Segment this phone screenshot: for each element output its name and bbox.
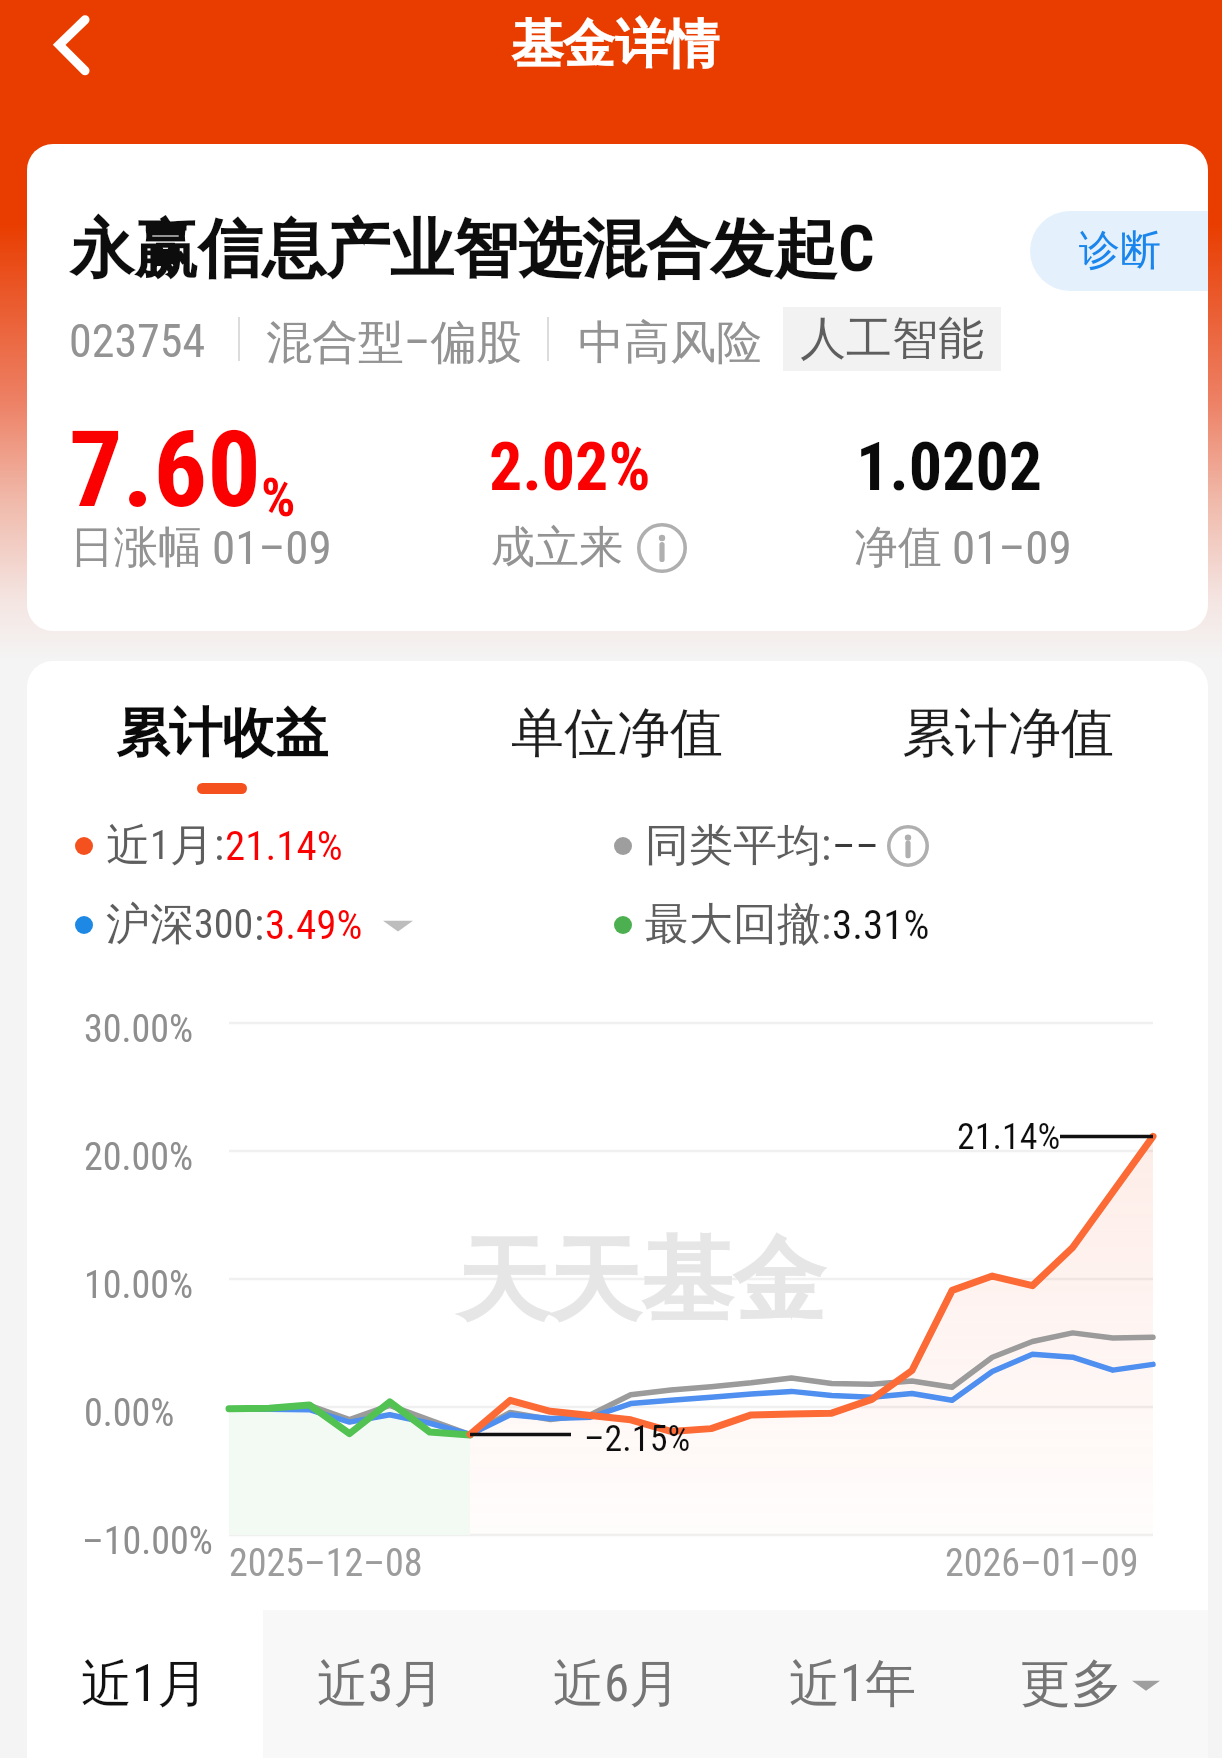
staticText: 023754 bbox=[69, 314, 206, 368]
staticText: 基金详情 bbox=[511, 12, 719, 78]
button[interactable]: 近1年 bbox=[735, 1610, 971, 1758]
button[interactable]: 诊断 bbox=[1030, 211, 1208, 291]
button[interactable]: 人工智能 bbox=[783, 307, 1001, 371]
staticText: % bbox=[261, 466, 296, 529]
staticText: –2.15% bbox=[584, 1418, 691, 1460]
staticText: 人工智能 bbox=[800, 310, 984, 368]
staticText: 20.00% bbox=[84, 1135, 194, 1180]
staticText: 累计净值 bbox=[902, 700, 1114, 767]
staticText: 01–09 bbox=[952, 520, 1072, 575]
staticText: 01–09 bbox=[212, 520, 332, 575]
staticText: 2026–01–09 bbox=[945, 1541, 1139, 1586]
button[interactable]: 近3月 bbox=[263, 1610, 499, 1758]
staticText: 2025–12–08 bbox=[229, 1541, 423, 1586]
staticText: 累计收益 bbox=[116, 700, 328, 767]
staticText: 近3月 bbox=[317, 1652, 445, 1716]
staticText: 单位净值 bbox=[511, 700, 723, 767]
staticText: 21.14% bbox=[225, 822, 343, 870]
staticText: 300 bbox=[194, 901, 254, 948]
staticText: 1.0202 bbox=[856, 429, 1043, 506]
staticText: 同类平均: bbox=[645, 818, 832, 873]
staticText: –– bbox=[832, 822, 879, 870]
staticText: 诊断 bbox=[1079, 225, 1161, 277]
staticText: 1 bbox=[150, 822, 170, 869]
staticText: 2.02% bbox=[489, 429, 651, 506]
button[interactable]: 近1月 bbox=[27, 1610, 263, 1758]
button[interactable]: 累计收益 bbox=[89, 700, 355, 794]
staticText: 最大回撤: bbox=[645, 897, 832, 952]
button[interactable]: 更多 bbox=[971, 1610, 1208, 1758]
staticText: 月: bbox=[170, 818, 225, 873]
staticText: : bbox=[254, 899, 265, 951]
staticText: 3.49% bbox=[265, 901, 363, 949]
button[interactable]: 累计净值 bbox=[875, 700, 1141, 783]
button[interactable]: 近6月 bbox=[499, 1610, 735, 1758]
staticText: 近 bbox=[106, 818, 150, 873]
button[interactable]: 单位净值 bbox=[484, 700, 750, 783]
staticText: 3.31% bbox=[832, 901, 930, 949]
staticText: 日涨幅 bbox=[70, 520, 202, 575]
staticText: 近6月 bbox=[553, 1652, 681, 1716]
staticText: –10.00% bbox=[82, 1519, 213, 1564]
staticText: 成立来 bbox=[491, 520, 623, 575]
staticText: 21.14% bbox=[957, 1116, 1061, 1158]
staticText: 0.00% bbox=[84, 1391, 175, 1436]
staticText: 混合型–偏股 bbox=[266, 314, 523, 372]
staticText: 中高风险 bbox=[578, 314, 762, 372]
staticText: 天天基金 bbox=[457, 1223, 825, 1339]
staticText: 近1年 bbox=[789, 1652, 917, 1716]
staticText: 30.00% bbox=[84, 1007, 194, 1052]
staticText: 10.00% bbox=[84, 1263, 194, 1308]
staticText: 沪深 bbox=[106, 897, 194, 952]
staticText: 7.60 bbox=[69, 408, 261, 532]
button[interactable]: Back bbox=[34, 14, 97, 77]
staticText: 永赢信息产业智选混合发起C bbox=[70, 209, 875, 290]
staticText: 近1月 bbox=[81, 1652, 209, 1716]
staticText: 净值 bbox=[854, 520, 942, 575]
staticText: 更多 bbox=[1020, 1652, 1122, 1716]
